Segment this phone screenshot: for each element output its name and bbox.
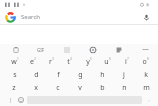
staticText: i — [125, 57, 127, 67]
staticText: x — [34, 83, 38, 93]
button[interactable]: More — [139, 44, 151, 55]
staticText: w — [11, 57, 17, 67]
button[interactable]: Search — [0, 10, 158, 24]
button[interactable]: v — [69, 81, 91, 94]
button[interactable]: z — [3, 81, 25, 94]
staticText: e — [30, 57, 34, 67]
button[interactable]: t — [60, 55, 79, 68]
button[interactable]: GIF — [37, 44, 45, 55]
staticText: 3 — [52, 57, 54, 61]
staticText: 1 — [17, 57, 19, 61]
staticText: b — [100, 83, 105, 93]
staticText: r — [49, 57, 52, 67]
button[interactable]: m — [135, 81, 157, 94]
staticText: o — [142, 57, 147, 67]
button[interactable]: k — [135, 68, 157, 81]
button[interactable]: b — [91, 81, 113, 94]
button[interactable]: Symbols — [5, 96, 15, 104]
staticText: 6 — [109, 57, 111, 61]
staticText: k — [144, 70, 148, 80]
button[interactable]: f — [47, 68, 69, 81]
staticText: s — [13, 70, 17, 80]
staticText: u — [104, 57, 109, 67]
staticText: f — [57, 70, 60, 80]
staticText: d — [34, 70, 39, 80]
staticText: y — [86, 57, 90, 67]
staticText: 5 — [90, 57, 92, 61]
button[interactable]: Settings — [87, 44, 98, 55]
button[interactable]: w — [6, 55, 24, 68]
staticText: GIF — [37, 47, 45, 53]
button[interactable]: Emoji — [15, 96, 27, 104]
staticText: v — [78, 83, 82, 93]
staticText: g — [78, 70, 83, 80]
staticText: z — [12, 83, 16, 93]
button[interactable]: Stickers — [113, 44, 124, 55]
button[interactable]: y — [79, 55, 98, 68]
button[interactable]: j — [113, 68, 135, 81]
button[interactable]: c — [47, 81, 69, 94]
button[interactable]: Voice search — [141, 12, 152, 23]
staticText: n — [122, 83, 127, 93]
button[interactable]: n — [113, 81, 135, 94]
button[interactable]: o — [136, 55, 155, 68]
staticText: h — [100, 70, 105, 80]
button[interactable]: u — [98, 55, 117, 68]
button[interactable]: clipboard — [10, 44, 21, 55]
staticText: 8 — [147, 57, 149, 61]
button[interactable]: e — [24, 55, 42, 68]
button[interactable]: d — [25, 68, 47, 81]
staticText: m — [143, 83, 150, 93]
button[interactable]: Grid — [61, 44, 72, 55]
staticText: j — [123, 70, 125, 80]
staticText: 7 — [127, 57, 129, 61]
button[interactable]: r — [42, 55, 60, 68]
button[interactable]: h — [91, 68, 113, 81]
staticText: 4 — [70, 57, 72, 61]
staticText: c — [56, 83, 60, 93]
button[interactable]: s — [4, 68, 25, 81]
staticText: 2 — [34, 57, 36, 61]
staticText: t — [67, 57, 70, 67]
staticText: Search — [21, 13, 40, 21]
button[interactable]: x — [25, 81, 47, 94]
button[interactable]: i — [117, 55, 136, 68]
button[interactable]: g — [69, 68, 91, 81]
